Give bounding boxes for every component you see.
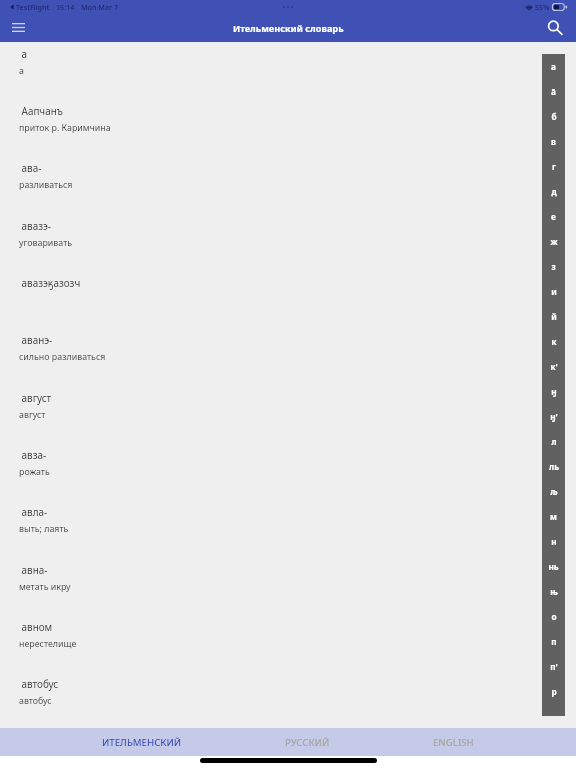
staticText: а xyxy=(551,61,556,72)
button[interactable]: ӈ' xyxy=(542,404,565,429)
button[interactable]: Search xyxy=(543,16,567,40)
staticText: сильно разливаться xyxy=(19,351,106,363)
button[interactable]: н xyxy=(542,529,565,554)
staticText: а xyxy=(19,65,24,77)
button[interactable]: ава- xyxy=(0,161,576,218)
button[interactable]: з xyxy=(542,254,565,279)
staticText: п' xyxy=(550,661,558,672)
staticText: о xyxy=(551,611,557,622)
button[interactable]: ИТЕЛЬМЕНСКИЙ xyxy=(96,731,188,754)
button[interactable]: г xyxy=(542,154,565,179)
staticText: н xyxy=(551,536,557,547)
staticText: РУССКИЙ xyxy=(285,736,330,749)
button[interactable]: к' xyxy=(542,354,565,379)
button[interactable]: в xyxy=(542,129,565,154)
button[interactable]: д xyxy=(542,179,565,204)
button[interactable]: ENGLISH xyxy=(427,731,480,754)
staticText: р xyxy=(551,686,557,697)
button[interactable]: п' xyxy=(542,654,565,679)
staticText: уговаривать xyxy=(19,237,73,249)
staticText: авна- xyxy=(19,563,48,576)
staticText: нерестелище xyxy=(19,638,77,650)
staticText: август xyxy=(19,409,46,421)
staticText: д xyxy=(551,186,557,197)
staticText: е xyxy=(551,211,556,222)
button[interactable]: л xyxy=(542,429,565,454)
button[interactable]: авном xyxy=(0,620,576,677)
button[interactable]: а xyxy=(542,54,565,79)
button[interactable]: а xyxy=(0,47,576,104)
staticText: 55% xyxy=(535,2,550,12)
staticText: ль xyxy=(549,461,559,472)
staticText: авазэ- xyxy=(19,219,52,232)
button[interactable]: Menu xyxy=(6,15,30,39)
button[interactable]: њ xyxy=(542,579,565,604)
staticText: автобус xyxy=(19,695,52,707)
staticText: ENGLISH xyxy=(433,736,474,749)
button[interactable]: авазэ- xyxy=(0,219,576,276)
staticText: з xyxy=(551,261,556,272)
staticText: њ xyxy=(550,586,558,597)
staticText: TestFlight xyxy=(16,2,50,12)
staticText: ж xyxy=(550,236,558,247)
button[interactable]: автобус xyxy=(0,677,576,734)
staticText: нь xyxy=(548,561,559,572)
staticText: рожать xyxy=(19,466,50,478)
button[interactable]: й xyxy=(542,304,565,329)
staticText: г xyxy=(552,161,556,172)
button[interactable]: ӈ xyxy=(542,379,565,404)
staticText: аванэ- xyxy=(19,333,53,346)
staticText: автобус xyxy=(19,677,59,690)
staticText: авла- xyxy=(19,505,48,518)
staticText: ā xyxy=(551,86,556,97)
staticText: авазэӄазозч xyxy=(19,276,81,289)
button[interactable]: РУССКИЙ xyxy=(279,731,336,754)
button[interactable]: о xyxy=(542,604,565,629)
button[interactable]: ж xyxy=(542,229,565,254)
staticText: метать икру xyxy=(19,581,71,593)
staticText: б xyxy=(551,111,557,122)
staticText: август xyxy=(19,391,52,404)
staticText: выть; лаять xyxy=(19,523,69,535)
staticText: авном xyxy=(19,620,53,633)
button[interactable]: љ xyxy=(542,479,565,504)
staticText: в xyxy=(551,136,556,147)
button[interactable]: нь xyxy=(542,554,565,579)
staticText: ӈ xyxy=(551,386,557,397)
staticText: к' xyxy=(550,361,558,372)
staticText: й xyxy=(551,311,557,322)
staticText: Аапчанъ xyxy=(19,104,63,117)
staticText: авза- xyxy=(19,448,47,461)
staticText: приток р. Каримчина xyxy=(19,122,111,134)
button[interactable]: п xyxy=(542,629,565,654)
button[interactable]: Аапчанъ xyxy=(0,104,576,161)
button[interactable]: аванэ- xyxy=(0,333,576,390)
staticText: и xyxy=(551,286,557,297)
staticText: Mon Mar 7 xyxy=(81,2,119,12)
staticText: а xyxy=(19,47,28,60)
button[interactable]: авна- xyxy=(0,563,576,620)
button[interactable]: б xyxy=(542,104,565,129)
button[interactable]: р xyxy=(542,679,565,704)
button[interactable]: авазэӄазозч xyxy=(0,276,576,333)
staticText: разливаться xyxy=(19,179,73,191)
staticText: ава- xyxy=(19,161,42,174)
staticText: к xyxy=(551,336,557,347)
button[interactable]: и xyxy=(542,279,565,304)
button[interactable]: август xyxy=(0,391,576,448)
staticText: ӈ' xyxy=(550,411,558,422)
staticText: ИТЕЛЬМЕНСКИЙ xyxy=(102,736,182,749)
staticText: п xyxy=(551,636,557,647)
button[interactable]: авза- xyxy=(0,448,576,505)
staticText: 15:14 xyxy=(56,2,75,12)
button[interactable]: е xyxy=(542,204,565,229)
staticText: Ительменский словарь xyxy=(233,22,344,34)
button[interactable]: к xyxy=(542,329,565,354)
staticText: љ xyxy=(550,486,558,497)
button[interactable]: авла- xyxy=(0,505,576,562)
staticText: л xyxy=(551,436,557,447)
button[interactable]: ль xyxy=(542,454,565,479)
button[interactable]: ā xyxy=(542,79,565,104)
staticText: м xyxy=(550,511,557,522)
button[interactable]: м xyxy=(542,504,565,529)
